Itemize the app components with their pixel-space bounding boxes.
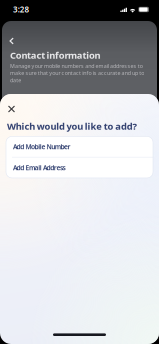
- staticText: Contact information: [10, 49, 101, 61]
- staticText: Manage your mobile numbers and email add…: [10, 62, 144, 84]
- staticText: 3:28: [13, 4, 29, 15]
- button[interactable]: Add Mobile Number: [6, 136, 153, 157]
- button[interactable]: Add Email Address: [6, 157, 153, 178]
- button[interactable]: Back: [2, 34, 31, 48]
- staticText: Add Email Address: [13, 163, 66, 172]
- staticText: Add Mobile Number: [13, 142, 71, 151]
- staticText: Which would you like to add?: [7, 120, 137, 132]
- button[interactable]: Close: [3, 101, 19, 117]
